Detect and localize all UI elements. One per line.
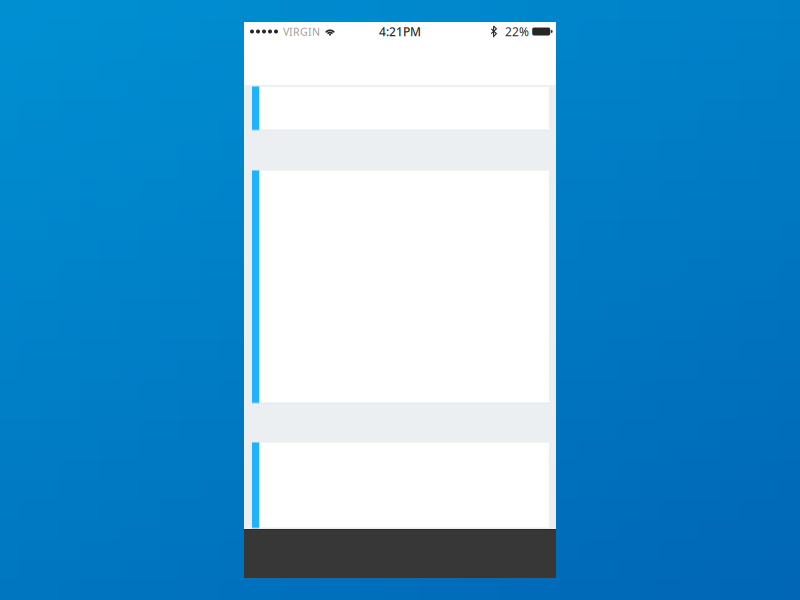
staticText: 4:21PM bbox=[379, 23, 421, 39]
button[interactable]: Second item bbox=[244, 170, 556, 404]
button[interactable]: First item bbox=[244, 86, 556, 131]
staticText: 22% bbox=[505, 23, 529, 39]
staticText: VIRGIN bbox=[283, 24, 320, 39]
button[interactable]: Third item bbox=[244, 442, 556, 529]
